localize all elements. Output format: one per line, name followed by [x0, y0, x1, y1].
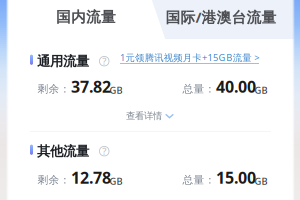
staticText: GB [109, 84, 122, 96]
staticText: 40.00 [216, 76, 256, 97]
staticText: GB [254, 84, 267, 96]
staticText: 12.78 [71, 167, 111, 188]
staticText: 37.82 [71, 76, 111, 97]
staticText: ? [102, 55, 106, 67]
staticText: 其他流量 [37, 143, 89, 159]
staticText: 1元领腾讯视频月卡+15GB流量 > [120, 51, 259, 64]
staticText: 15.00 [216, 167, 256, 188]
staticText: 总量： [182, 173, 215, 186]
staticText: 总量： [182, 82, 215, 95]
staticText: ? [102, 145, 106, 157]
button[interactable]: 国际/港澳台流量 [161, 2, 281, 32]
staticText: 剩余： [37, 173, 70, 186]
button[interactable]: 国内流量 [26, 2, 146, 32]
staticText: 国内流量 [56, 8, 116, 26]
staticText: GB [109, 175, 122, 187]
staticText: 查看详情 [126, 110, 162, 122]
staticText: 通用流量 [37, 53, 89, 69]
button[interactable]: 查看详情 [126, 111, 174, 121]
staticText: 国际/港澳台流量 [165, 7, 276, 27]
staticText: 剩余： [37, 82, 70, 95]
staticText: GB [254, 175, 267, 187]
button[interactable]: 1元领腾讯视频月卡+15GB流量 > [120, 53, 261, 66]
